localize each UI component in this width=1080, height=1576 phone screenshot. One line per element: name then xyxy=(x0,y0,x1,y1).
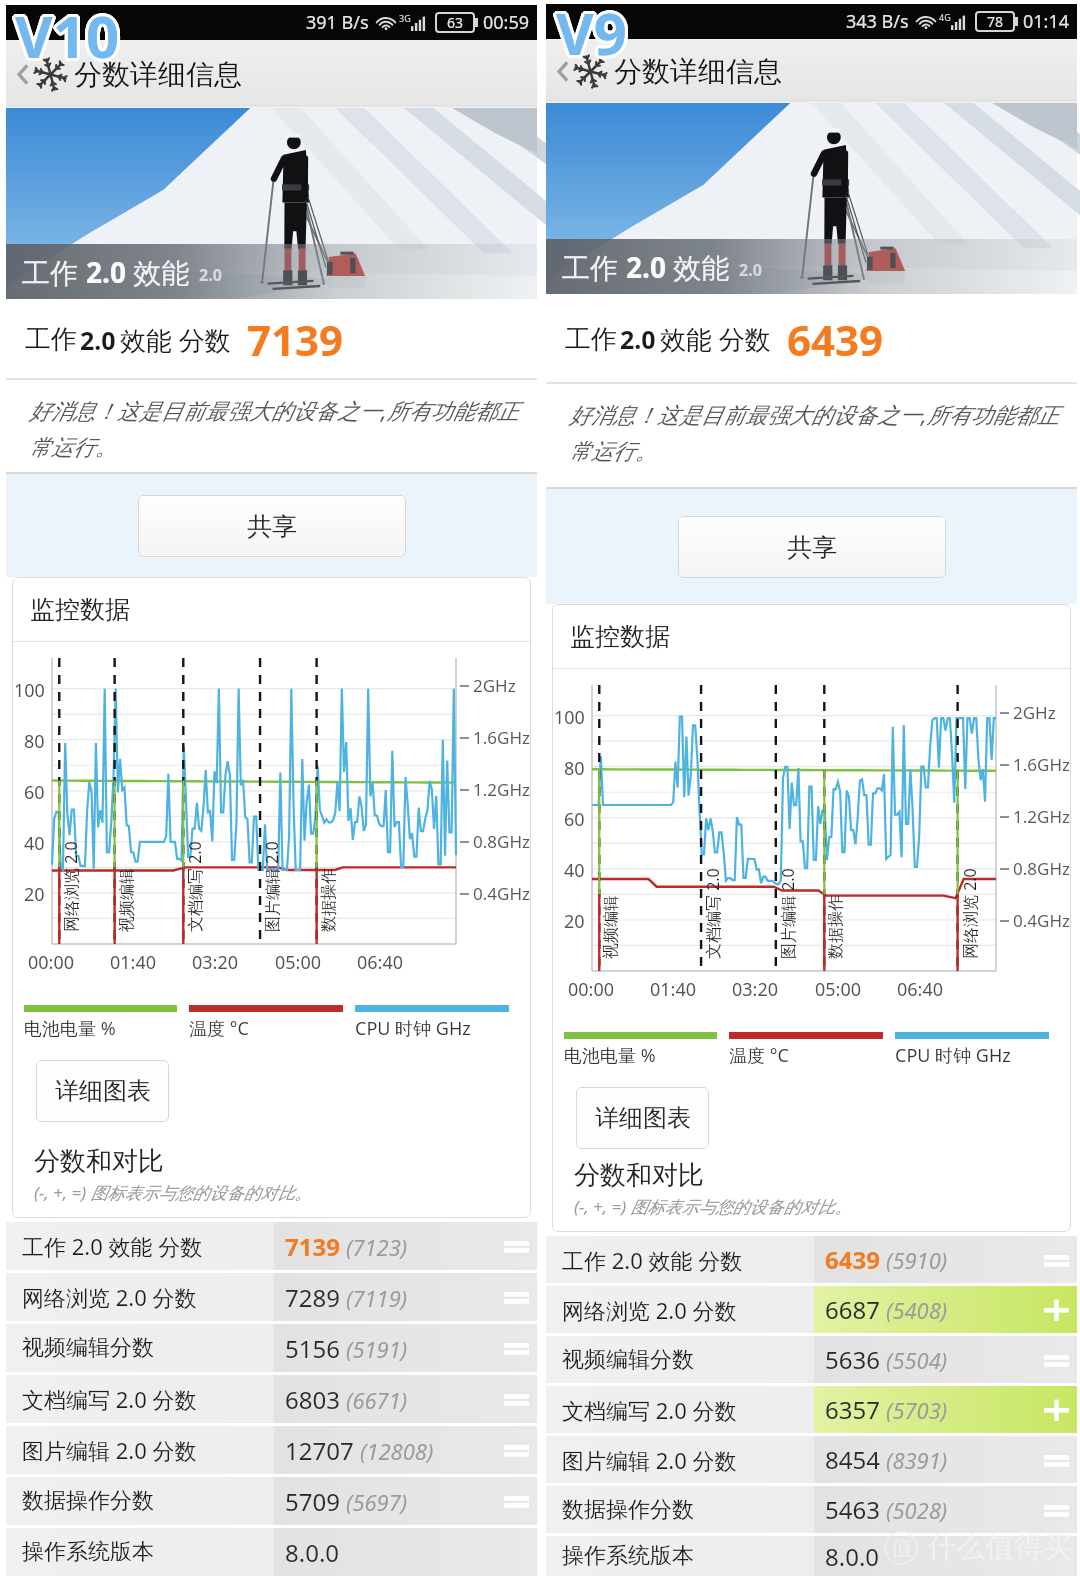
staticText: 20 xyxy=(24,882,45,907)
staticText: V10 xyxy=(15,0,120,78)
staticText: (7119) xyxy=(346,1283,408,1313)
staticText: 01:14 xyxy=(1023,9,1070,34)
staticText: 图片编辑 2.0 分数 xyxy=(562,1445,737,1475)
button[interactable]: 操作系统版本 xyxy=(6,1528,537,1576)
staticText: 工作 xyxy=(22,253,86,291)
staticText: V10 xyxy=(18,0,123,74)
staticText: 2.0 xyxy=(199,264,222,286)
staticText: 343 B/s xyxy=(846,9,909,34)
staticText: (5408) xyxy=(886,1295,948,1325)
staticText: 监控数据 xyxy=(30,594,130,625)
staticText: 40 xyxy=(564,858,585,883)
button[interactable]: 网络浏览 2.0 分数 xyxy=(546,1286,1077,1333)
button[interactable]: 视频编辑分数 xyxy=(546,1336,1077,1383)
button[interactable]: 数据操作分数 xyxy=(6,1477,537,1525)
staticText: V9 xyxy=(558,0,629,71)
button[interactable]: 共享 xyxy=(138,495,406,557)
staticText: V10 xyxy=(13,0,118,77)
staticText: V10 xyxy=(16,0,121,78)
staticText: V10 xyxy=(17,0,122,76)
staticText: (5504) xyxy=(886,1345,948,1375)
button[interactable]: 文档编写 2.0 分数 xyxy=(546,1386,1077,1433)
staticText: V9 xyxy=(556,0,627,69)
staticText: V10 xyxy=(14,0,119,77)
staticText: 效能 xyxy=(666,248,730,286)
staticText: 4G xyxy=(939,11,951,23)
staticText: 60 xyxy=(24,780,45,805)
staticText: V9 xyxy=(554,0,625,70)
staticText: V9 xyxy=(556,0,627,75)
button[interactable]: 详细图表 xyxy=(36,1060,169,1122)
staticText: 5156 xyxy=(285,1332,340,1365)
staticText: V9 xyxy=(555,0,626,69)
staticText: 06:40 xyxy=(897,977,944,1002)
staticText: 0.8GHz xyxy=(1013,857,1070,880)
staticText: 值 xyxy=(891,1535,912,1561)
staticText: V10 xyxy=(18,0,123,76)
staticText: (5028) xyxy=(886,1495,948,1525)
staticText: 100 xyxy=(554,705,585,730)
staticText: 8454 xyxy=(825,1443,880,1476)
staticText: (5703) xyxy=(886,1395,948,1425)
button[interactable]: 工作 2.0 效能 分数 xyxy=(6,1222,537,1270)
staticText: 78 xyxy=(987,12,1004,31)
button[interactable]: 视频编辑分数 xyxy=(6,1324,537,1372)
staticText: 好消息！这是目前最强大的设备之一,所有功能都正常运行。 xyxy=(569,399,1063,465)
staticText: 01:40 xyxy=(650,977,697,1002)
staticText: 操作系统版本 xyxy=(22,1538,154,1566)
staticText: V9 xyxy=(557,0,628,75)
staticText: V10 xyxy=(16,0,121,72)
staticText: V9 xyxy=(557,0,628,74)
staticText: V10 xyxy=(13,0,118,73)
staticText: 80 xyxy=(24,729,45,754)
staticText: 06:40 xyxy=(357,950,404,975)
button[interactable]: 操作系统版本 xyxy=(546,1536,1077,1576)
staticText: V9 xyxy=(554,0,625,74)
staticText: 03:20 xyxy=(192,950,239,975)
staticText: 7289 xyxy=(285,1281,340,1314)
staticText: 数据操作 xyxy=(826,895,846,959)
staticText: (12808) xyxy=(360,1436,434,1466)
staticText: 视频编辑 xyxy=(117,868,137,932)
staticText: V9 xyxy=(558,0,629,74)
staticText: 2.0 xyxy=(80,323,116,357)
button[interactable]: 数据操作分数 xyxy=(546,1486,1077,1533)
button[interactable]: 详细图表 xyxy=(576,1087,709,1149)
staticText: 6687 xyxy=(825,1293,880,1326)
staticText: 05:00 xyxy=(815,977,862,1002)
staticText: 网络浏览 2.0 分数 xyxy=(562,1295,737,1325)
staticText: V10 xyxy=(16,0,121,73)
button[interactable]: Back xyxy=(552,48,574,94)
staticText: 2.0 xyxy=(739,259,762,281)
staticText: V9 xyxy=(554,0,625,71)
button[interactable]: 分数详细信息 xyxy=(34,40,242,108)
button[interactable]: 文档编写 2.0 分数 xyxy=(6,1375,537,1423)
button[interactable]: 分数详细信息 xyxy=(574,39,782,103)
staticText: 监控数据 xyxy=(570,621,670,652)
staticText: 详细图表 xyxy=(55,1076,151,1106)
staticText: V9 xyxy=(559,0,630,71)
staticText: 100 xyxy=(14,678,45,703)
staticText: 00:00 xyxy=(28,950,75,975)
staticText: 8.0.0 xyxy=(825,1540,880,1573)
staticText: V9 xyxy=(559,0,630,72)
button[interactable]: 共享 xyxy=(678,516,946,578)
staticText: V10 xyxy=(14,0,119,78)
button[interactable]: 图片编辑 2.0 分数 xyxy=(546,1436,1077,1483)
staticText: (5191) xyxy=(346,1334,408,1364)
button[interactable]: 网络浏览 2.0 分数 xyxy=(6,1273,537,1321)
button[interactable]: 工作 2.0 效能 分数 xyxy=(546,1236,1077,1283)
staticText: 文档编写 2.0 xyxy=(184,841,206,932)
staticText: 6357 xyxy=(825,1393,880,1426)
staticText: (5697) xyxy=(346,1487,408,1517)
staticText: 文档编写 2.0 xyxy=(702,868,724,959)
staticText: 0.4GHz xyxy=(473,882,530,905)
staticText: (-, +, =) 图标表示与您的设备的对比。 xyxy=(34,1181,312,1204)
staticText: 视频编辑分数 xyxy=(22,1334,154,1362)
staticText: 2GHz xyxy=(473,674,516,697)
staticText: 5636 xyxy=(825,1343,880,1376)
staticText: 图片编辑 2.0 xyxy=(777,868,799,959)
button[interactable]: Back xyxy=(12,51,34,97)
staticText: V9 xyxy=(556,0,627,72)
button[interactable]: 图片编辑 2.0 分数 xyxy=(6,1426,537,1474)
